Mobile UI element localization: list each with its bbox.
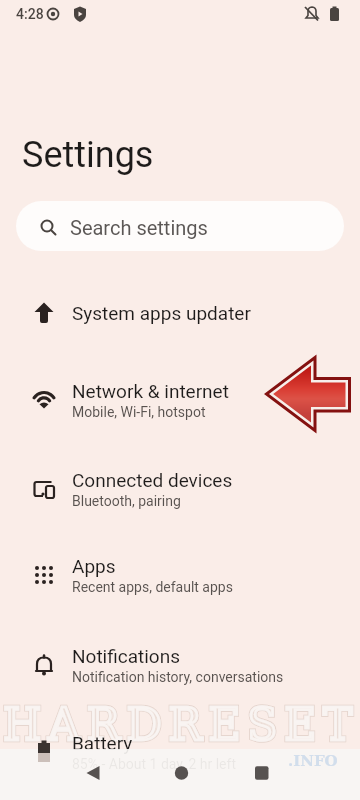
button[interactable] [240,755,284,795]
button[interactable]: Network & internet [0,356,360,444]
staticText: .INFO [288,752,338,770]
staticText: Mobile, Wi-Fi, hotspot [72,404,206,420]
button[interactable] [159,755,203,795]
button[interactable]: Search settings [16,201,344,251]
staticText: HARDRESET [3,699,360,750]
staticText: Battery [72,732,133,754]
staticText: Notification history, conversations [72,669,284,685]
button[interactable]: Battery [0,708,360,796]
staticText: HARDRESET [3,699,360,750]
button[interactable]: Notifications [0,621,360,709]
staticText: Network & internet [72,380,229,402]
button[interactable]: System apps updater [0,285,360,341]
staticText: 4:28 [16,6,44,22]
staticText: Settings [22,134,154,176]
staticText: HARDRESET [3,699,360,750]
button[interactable] [71,755,115,795]
staticText: 85% - About 1 day, 2 hr left [72,756,236,772]
button[interactable]: Connected devices [0,445,360,533]
staticText: Connected devices [72,469,233,491]
staticText: Recent apps, default apps [72,579,233,595]
staticText: Search settings [70,216,208,239]
button[interactable]: Apps [0,531,360,619]
staticText: Apps [72,555,116,577]
staticText: Bluetooth, pairing [72,493,181,509]
staticText: System apps updater [72,302,251,324]
staticText: Notifications [72,645,181,667]
